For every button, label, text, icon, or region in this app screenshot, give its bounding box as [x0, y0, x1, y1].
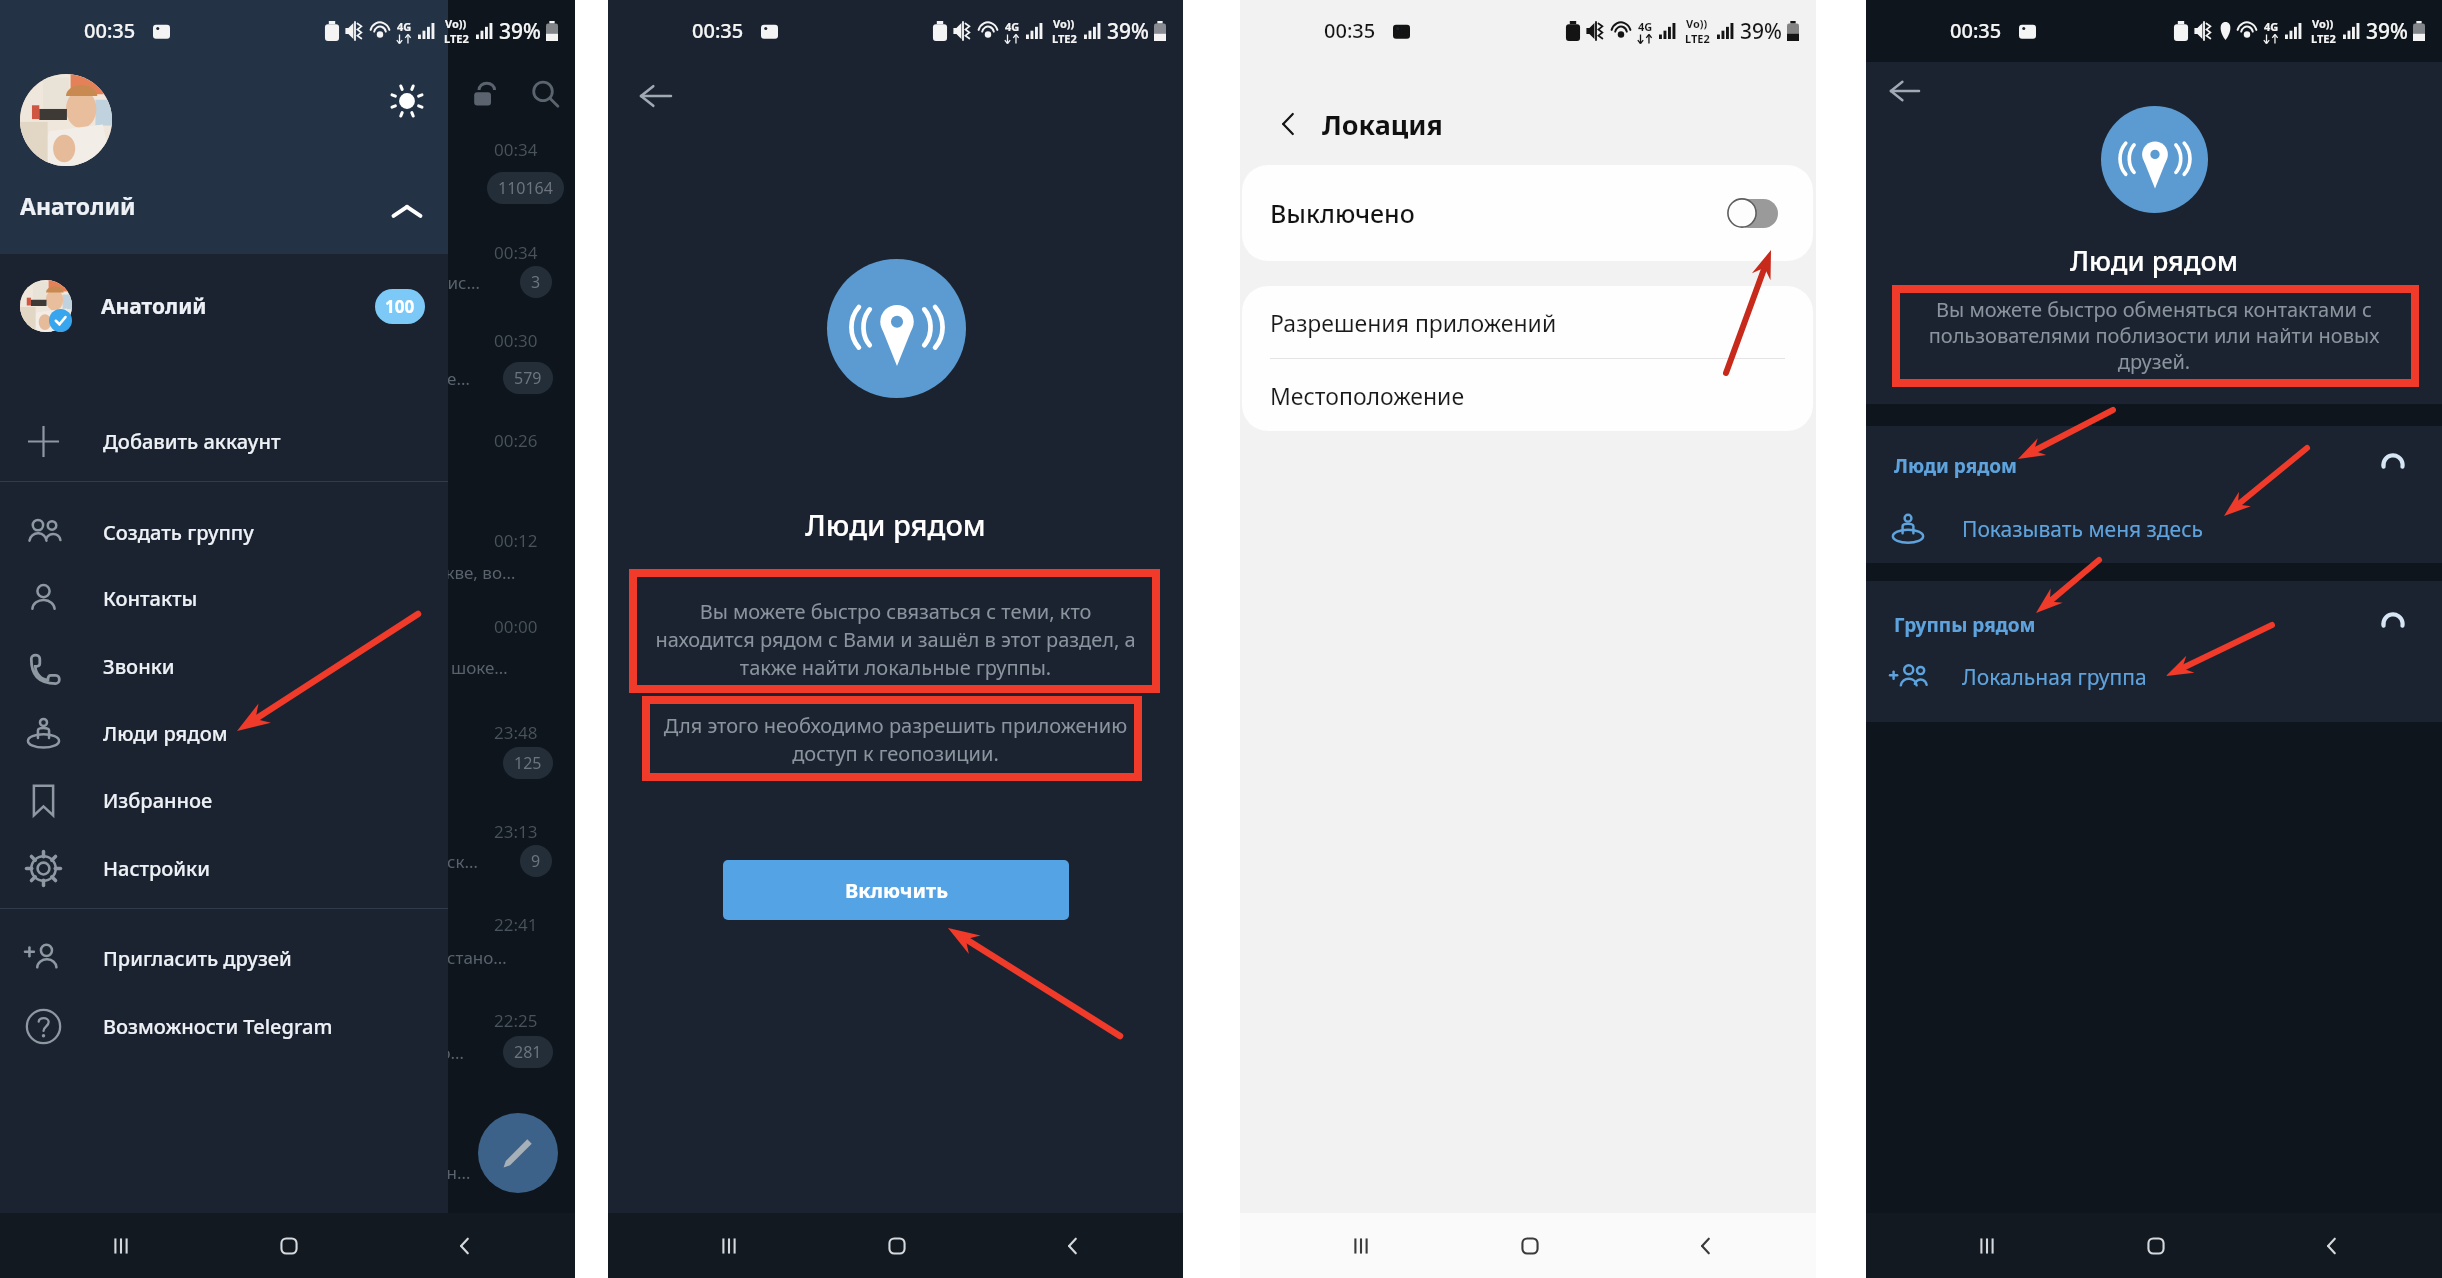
staticText: 00:35	[1324, 17, 1376, 44]
staticText: Люди рядом	[1894, 453, 2017, 479]
button[interactable]: Создать группу	[0, 499, 448, 565]
button[interactable]: Home	[815, 1213, 976, 1278]
staticText: 281	[514, 1041, 542, 1063]
staticText: LTE2	[1685, 31, 1710, 46]
staticText: 4G	[1005, 19, 1020, 34]
button[interactable]: Home	[2074, 1213, 2235, 1278]
staticText: 579	[514, 367, 542, 389]
staticText: LTE2	[2311, 31, 2336, 46]
button[interactable]: Анатолий	[0, 0, 448, 254]
staticText: 3	[531, 271, 541, 293]
staticText: нис…	[437, 271, 480, 294]
staticText: 23:48	[494, 721, 538, 744]
staticText: 4G	[397, 19, 412, 34]
staticText: 00:30	[494, 329, 538, 352]
staticText: остано…	[437, 946, 507, 969]
button[interactable]: Показывать меня здесь	[1866, 498, 2442, 560]
button[interactable]: Пригласить друзей	[0, 925, 448, 991]
button[interactable]: New message	[478, 1113, 558, 1193]
staticText: Разрешения приложений	[1270, 307, 1557, 338]
staticText: 00:26	[494, 429, 538, 452]
staticText: Добавить аккаунт	[103, 428, 281, 455]
button[interactable]: Звонки	[0, 633, 448, 699]
button[interactable]: Настройки	[0, 835, 448, 901]
button[interactable]: Back	[987, 1213, 1183, 1278]
staticText: 00:34	[494, 138, 538, 161]
button[interactable]: Recents	[0, 1213, 219, 1278]
button[interactable]: Home	[1448, 1213, 1609, 1278]
button[interactable]: Toggle theme	[383, 77, 431, 125]
staticText: Vo))	[445, 16, 467, 31]
staticText: Звонки	[103, 653, 175, 680]
staticText: 00:34	[494, 241, 538, 264]
button[interactable]: Люди рядом	[0, 700, 448, 766]
staticText: 22:41	[494, 913, 538, 936]
button[interactable]: Expand accounts	[383, 188, 431, 236]
staticText: Выключено	[1270, 196, 1415, 230]
staticText: Люди рядом	[608, 505, 1183, 544]
staticText: Настройки	[103, 855, 210, 882]
button[interactable]: Back	[1268, 104, 1308, 144]
button[interactable]: Избранное	[0, 767, 448, 833]
staticText: 23:13	[494, 820, 538, 843]
staticText: Местоположение	[1270, 380, 1465, 411]
button[interactable]: Back	[1882, 68, 1928, 114]
staticText: 9	[531, 850, 541, 872]
button[interactable]: Recents	[1866, 1213, 2085, 1278]
staticText: ю…	[437, 1041, 465, 1064]
button[interactable]: Разрешения приложений	[1242, 286, 1813, 358]
button[interactable]: Включить	[723, 860, 1069, 920]
staticText: 39%	[499, 17, 541, 46]
button[interactable]: Home	[207, 1213, 368, 1278]
staticText: Анатолий	[101, 292, 207, 321]
button[interactable]: Back	[630, 70, 682, 122]
staticText: Люди рядом	[1866, 242, 2442, 279]
staticText: Избранное	[103, 787, 213, 814]
button[interactable]: Местоположение	[1242, 359, 1813, 431]
staticText: вн…	[437, 1161, 471, 1184]
staticText: LTE2	[444, 31, 469, 46]
staticText: Пригласить друзей	[103, 945, 292, 972]
staticText: Vo))	[1053, 16, 1075, 31]
button[interactable]: Recents	[608, 1213, 827, 1278]
staticText: Анатолий	[20, 190, 136, 221]
staticText: 00:12	[494, 529, 538, 552]
staticText: Vo))	[2312, 16, 2334, 31]
staticText: 4G	[1638, 19, 1653, 34]
button[interactable]: Добавить аккаунт	[0, 408, 448, 474]
button[interactable]: Локальная группа	[1866, 646, 2442, 708]
button[interactable]: Passcode lock	[464, 73, 506, 115]
staticText: 22:25	[494, 1009, 538, 1032]
staticText: 125	[514, 752, 542, 774]
button[interactable]: Recents	[1240, 1213, 1459, 1278]
staticText: 00:35	[1950, 17, 2002, 44]
button[interactable]: Выключено	[1242, 165, 1813, 261]
staticText: 00:35	[692, 17, 744, 44]
button[interactable]: Анатолий	[0, 262, 448, 350]
staticText: Возможности Telegram	[103, 1013, 333, 1040]
button[interactable]: Контакты	[0, 565, 448, 631]
staticText: в шоке…	[437, 656, 508, 679]
staticText: 39%	[1740, 17, 1782, 46]
staticText: оск…	[437, 850, 478, 873]
button[interactable]: Возможности Telegram	[0, 993, 448, 1059]
staticText: Включить	[845, 877, 948, 904]
staticText: 39%	[1107, 17, 1149, 46]
button[interactable]: Back	[379, 1213, 575, 1278]
staticText: че…	[437, 367, 470, 390]
staticText: скве, во…	[437, 561, 516, 584]
button[interactable]: Back	[1620, 1213, 1816, 1278]
staticText: 00:35	[84, 17, 136, 44]
staticText: Создать группу	[103, 519, 254, 546]
staticText: Вы можете быстро обменяться контактами с…	[1866, 296, 2442, 375]
button[interactable]: Search	[524, 73, 566, 115]
staticText: Локальная группа	[1962, 663, 2147, 692]
staticText: 00:00	[494, 615, 538, 638]
staticText: Люди рядом	[103, 720, 228, 747]
staticText: 39%	[2366, 17, 2408, 46]
staticText: 100	[385, 295, 415, 318]
staticText: 4G	[2264, 19, 2279, 34]
staticText: LTE2	[1052, 31, 1077, 46]
button[interactable]: Back	[2246, 1213, 2442, 1278]
staticText: Vo))	[1686, 16, 1708, 31]
